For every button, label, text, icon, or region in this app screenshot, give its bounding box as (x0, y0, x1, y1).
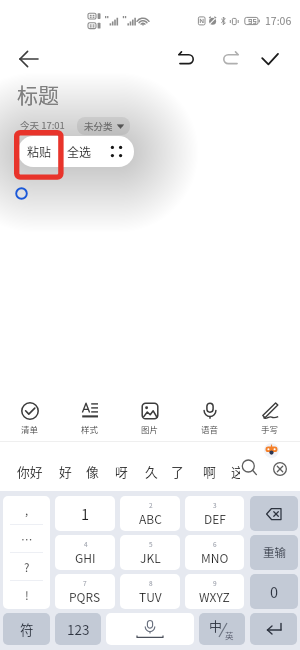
button[interactable]: … (3, 525, 50, 553)
button[interactable]: 4 (55, 535, 115, 570)
staticText: 语音 (201, 423, 219, 435)
staticText: MNO (201, 549, 229, 566)
button[interactable]: 呀 (109, 458, 134, 484)
staticText: 图片 (141, 423, 159, 435)
button[interactable]: 啊 (197, 458, 222, 484)
staticText: , (25, 502, 29, 519)
staticText: 1 (81, 503, 90, 524)
staticText: 了 (171, 462, 184, 481)
staticText: 这 (231, 462, 244, 481)
staticText: 未分类 (84, 119, 113, 133)
staticText: JKL (140, 549, 161, 566)
button[interactable]: 语音 (180, 396, 240, 436)
staticText: PQRS (69, 588, 101, 605)
staticText: … (21, 531, 33, 548)
staticText: 标题 (17, 79, 59, 109)
button[interactable]: 中 (199, 613, 245, 645)
button[interactable]: 3 (185, 496, 244, 531)
staticText: DEF (204, 510, 226, 527)
button[interactable]: 久 (139, 458, 164, 484)
button[interactable]: ! (3, 581, 50, 609)
button[interactable]: 好 (53, 458, 78, 484)
button[interactable]: 清单 (0, 396, 60, 436)
button[interactable]: Redo (214, 45, 244, 73)
staticText: 像 (86, 462, 99, 481)
button[interactable]: Back (12, 45, 44, 73)
button[interactable]: 1 (55, 496, 115, 531)
staticText: 0 (270, 581, 279, 602)
button[interactable]: 123 (55, 613, 101, 645)
button[interactable]: 粘贴 (18, 136, 60, 167)
staticText: TUV (139, 588, 162, 605)
staticText: 123 (67, 619, 90, 639)
button[interactable]: 全选 (60, 136, 99, 167)
staticText: GHI (75, 549, 96, 566)
button[interactable]: 6 (185, 535, 244, 570)
button[interactable]: 像 (80, 458, 105, 484)
button[interactable]: 5 (120, 535, 180, 570)
staticText: 6 (213, 539, 217, 548)
staticText: WXYZ (199, 588, 230, 605)
button[interactable]: 2 (120, 496, 180, 531)
button[interactable]: Close keyboard suggestions (269, 458, 290, 479)
button[interactable]: ? (3, 553, 50, 581)
staticText: 3 (213, 500, 217, 509)
staticText: 5 (149, 539, 153, 548)
staticText: ABC (139, 510, 162, 527)
staticText: 好 (59, 462, 72, 481)
staticText: 符 (20, 619, 34, 639)
button[interactable]: 图片 (120, 396, 180, 436)
button[interactable]: Undo (173, 45, 203, 73)
button[interactable]: Done (255, 45, 285, 73)
button[interactable]: 9 (185, 574, 244, 609)
staticText: 4 (84, 539, 88, 548)
staticText: 啊 (203, 462, 216, 481)
staticText: ! (25, 587, 29, 604)
button[interactable]: 8 (120, 574, 180, 609)
staticText: 中 (209, 616, 223, 635)
staticText: 呀 (115, 462, 128, 481)
staticText: 8 (149, 578, 153, 587)
button[interactable]: Backspace (250, 496, 298, 531)
staticText: 7 (83, 578, 87, 587)
button[interactable]: More options (99, 136, 134, 167)
button[interactable]: Enter (250, 613, 297, 645)
button[interactable]: 了 (165, 458, 190, 484)
staticText: 英 (225, 629, 234, 641)
staticText: 粘贴 (27, 143, 52, 160)
button[interactable]: Space / voice input (106, 613, 194, 645)
button[interactable]: 重输 (250, 535, 298, 570)
staticText: 样式 (81, 423, 99, 435)
button[interactable]: 你好 (11, 458, 49, 484)
staticText: ? (24, 559, 30, 576)
staticText: 久 (145, 462, 158, 481)
staticText: 今天 17:01 (20, 118, 65, 132)
staticText: 全选 (67, 143, 92, 160)
button[interactable]: 这 (225, 458, 250, 484)
button[interactable]: 7 (55, 574, 115, 609)
button[interactable]: , (3, 496, 50, 525)
button[interactable]: 符 (3, 613, 50, 645)
button[interactable]: 未分类 (77, 117, 130, 135)
staticText: 你好 (17, 462, 43, 481)
staticText: 9 (213, 578, 217, 587)
staticText: 清单 (21, 423, 39, 435)
staticText: 2 (149, 500, 153, 509)
button[interactable]: Search (239, 457, 261, 479)
button[interactable]: 手写 (240, 396, 300, 436)
button[interactable]: 样式 (60, 396, 120, 436)
button[interactable]: 0 (250, 574, 298, 609)
staticText: 重输 (263, 544, 286, 561)
staticText: 手写 (261, 423, 279, 435)
staticText: 17:06 (265, 13, 292, 28)
